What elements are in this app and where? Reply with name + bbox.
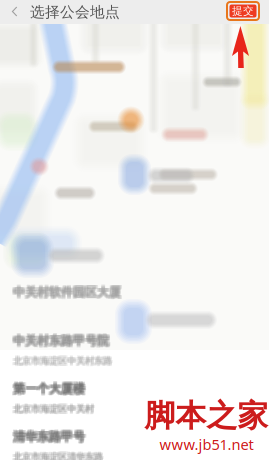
staticText: 北京市海淀区中关村东路 — [12, 355, 111, 367]
staticText: 北京市海淀区中关村东路 — [13, 354, 112, 366]
staticText: 清华东路甲号 — [12, 429, 84, 444]
staticText: 清华东路甲号 — [13, 428, 85, 443]
staticText: 北京市海淀区中关村东路 — [12, 356, 111, 368]
button[interactable]: 中关村东路甲号院 — [0, 326, 269, 374]
staticText: 北京市海淀区中关村 — [14, 403, 95, 415]
staticText: 北京市海淀区中关村东路 — [14, 355, 113, 367]
staticText: 中关村东路甲号院 — [12, 335, 108, 349]
staticText: 第一个大厦楼 — [13, 380, 85, 395]
staticText: 北京市海淀区清华东路 — [14, 451, 104, 460]
staticText: 北京市海淀区中关村 — [14, 404, 95, 416]
staticText: 清华东路甲号 — [14, 428, 86, 443]
staticText: 北京市海淀区清华东路 — [12, 450, 102, 460]
staticText: 中关村软件园区大厦 — [12, 286, 120, 301]
staticText: 北京市海淀区中关村 — [12, 403, 93, 415]
staticText: 中关村软件园区大厦 — [14, 284, 122, 298]
staticText: 清华东路甲号 — [14, 429, 86, 444]
staticText: 北京市海淀区中关村 — [13, 403, 94, 415]
staticText: 第一个大厦楼 — [13, 383, 85, 397]
staticText: 中关村软件园区大厦 — [14, 285, 122, 300]
staticText: 中关村东路甲号院 — [14, 335, 110, 349]
staticText: 北京市海淀区中关村东路 — [13, 355, 112, 367]
staticText: 中关村软件园区大厦 — [13, 285, 121, 300]
staticText: 第一个大厦楼 — [14, 383, 86, 397]
staticText: 北京市海淀区中关村东路 — [13, 356, 112, 368]
staticText: 北京市海淀区中关村 — [12, 404, 93, 416]
staticText: 中关村东路甲号院 — [13, 332, 109, 347]
staticText: 提交 — [232, 4, 254, 17]
staticText: 清华东路甲号 — [13, 429, 85, 444]
staticText: 北京市海淀区中关村 — [14, 402, 95, 414]
staticText: 北京市海淀区中关村东路 — [14, 356, 113, 368]
staticText: 第一个大厦楼 — [13, 381, 85, 396]
staticText: 清华东路甲号 — [12, 428, 84, 443]
staticText: 选择公会地点 — [30, 3, 120, 21]
staticText: 北京市海淀区清华东路 — [13, 451, 103, 460]
staticText: 北京市海淀区中关村东路 — [12, 354, 111, 366]
staticText: 第一个大厦楼 — [12, 383, 84, 397]
staticText: 第一个大厦楼 — [14, 381, 86, 396]
staticText: 脚本之家 — [144, 397, 268, 435]
button[interactable]: 第一个大厦楼 — [0, 374, 269, 422]
button[interactable]: 清华东路甲号 — [0, 422, 269, 460]
staticText: 北京市海淀区中关村 — [13, 404, 94, 416]
staticText: 中关村东路甲号院 — [14, 333, 110, 348]
staticText: 清华东路甲号 — [14, 431, 86, 445]
staticText: 北京市海淀区清华东路 — [13, 450, 103, 460]
staticText: 北京市海淀区中关村 — [12, 402, 93, 414]
staticText: 北京市海淀区清华东路 — [12, 452, 102, 460]
staticText: 中关村东路甲号院 — [13, 335, 109, 349]
staticText: 清华东路甲号 — [12, 431, 84, 445]
staticText: 北京市海淀区清华东路 — [12, 451, 102, 460]
button[interactable]: 中关村软件园区大厦 — [0, 278, 269, 326]
staticText: 第一个大厦楼 — [12, 380, 84, 395]
staticText: 中关村软件园区大厦 — [13, 286, 121, 301]
staticText: 北京市海淀区清华东路 — [13, 452, 103, 460]
staticText: www.jb51.net — [159, 434, 253, 454]
staticText: 北京市海淀区中关村东路 — [14, 354, 113, 366]
staticText: 中关村软件园区大厦 — [12, 284, 120, 298]
staticText: 中关村软件园区大厦 — [12, 285, 120, 300]
staticText: 第一个大厦楼 — [12, 381, 84, 396]
staticText: 北京市海淀区清华东路 — [14, 450, 104, 460]
staticText: 清华东路甲号 — [13, 431, 85, 445]
staticText: 中关村东路甲号院 — [13, 333, 109, 348]
staticText: 北京市海淀区中关村 — [13, 402, 94, 414]
staticText: 中关村东路甲号院 — [12, 332, 108, 347]
staticText: 北京市海淀区清华东路 — [14, 452, 104, 460]
staticText: 中关村东路甲号院 — [14, 332, 110, 347]
staticText: 第一个大厦楼 — [14, 380, 86, 395]
button[interactable]: Back — [5, 0, 25, 24]
staticText: 中关村软件园区大厦 — [14, 286, 122, 301]
staticText: 中关村东路甲号院 — [12, 333, 108, 348]
staticText: 中关村软件园区大厦 — [13, 284, 121, 298]
button[interactable]: 提交 — [227, 2, 259, 20]
